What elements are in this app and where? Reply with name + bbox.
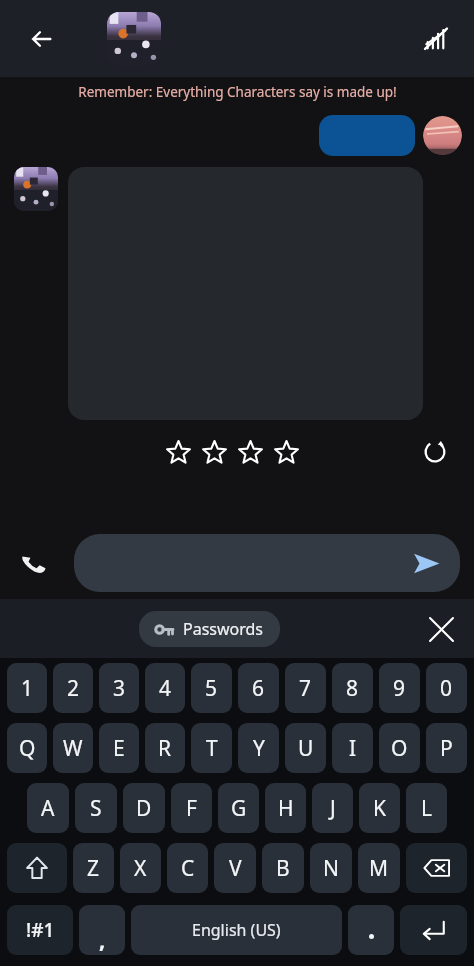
button[interactable]: V — [214, 843, 256, 893]
button[interactable]: Rate 3 stars — [232, 434, 268, 470]
button[interactable]: 9 — [379, 663, 420, 713]
button[interactable]: Your avatar — [423, 116, 462, 155]
button[interactable]: Q — [7, 723, 47, 773]
button[interactable]: English (US) — [131, 905, 342, 955]
button[interactable]: F — [171, 783, 212, 833]
staticText: 5 — [205, 674, 218, 703]
staticText: P — [440, 734, 453, 763]
staticText: K — [373, 794, 386, 823]
button[interactable]: T — [191, 723, 232, 773]
button[interactable]: A — [27, 783, 69, 833]
staticText: 7 — [299, 674, 312, 703]
button[interactable]: O — [379, 723, 420, 773]
button[interactable]: N — [310, 843, 352, 893]
button[interactable]: D — [123, 783, 165, 833]
button[interactable]: 1 — [7, 663, 47, 713]
button[interactable]: X — [120, 843, 161, 893]
button[interactable]: J — [312, 783, 353, 833]
staticText: S — [90, 794, 102, 823]
staticText: !#1 — [26, 917, 55, 943]
staticText: R — [158, 734, 172, 763]
staticText: F — [186, 794, 197, 823]
button[interactable]: P — [426, 723, 467, 773]
button[interactable]: H — [265, 783, 306, 833]
button[interactable]: 7 — [285, 663, 326, 713]
staticText: B — [276, 854, 290, 883]
staticText: Q — [19, 734, 36, 763]
staticText: X — [134, 854, 147, 883]
button[interactable]: Character avatar — [14, 167, 58, 211]
staticText: 2 — [67, 674, 80, 703]
staticText: Passwords — [183, 618, 264, 640]
button[interactable]: 4 — [145, 663, 185, 713]
button[interactable]: Period — [348, 905, 394, 955]
staticText: G — [231, 794, 247, 823]
button[interactable]: Comma — [79, 905, 125, 955]
button[interactable]: E — [99, 723, 139, 773]
button[interactable]: Close suggestions — [420, 608, 462, 650]
button[interactable]: 3 — [99, 663, 139, 713]
button[interactable]: Rate 2 stars — [196, 434, 232, 470]
button[interactable]: M — [358, 843, 400, 893]
staticText: I — [349, 734, 357, 763]
staticText: C — [181, 854, 195, 883]
staticText: W — [63, 734, 83, 763]
staticText: H — [278, 794, 294, 823]
staticText: M — [369, 854, 389, 883]
button[interactable]: Send — [74, 534, 460, 592]
button[interactable]: Y — [238, 723, 279, 773]
button[interactable]: Character avatar — [107, 12, 161, 66]
staticText: N — [323, 854, 339, 883]
button[interactable]: I — [332, 723, 373, 773]
staticText: 9 — [393, 674, 406, 703]
button[interactable]: 0 — [426, 663, 467, 713]
button[interactable]: 6 — [238, 663, 279, 713]
staticText: 8 — [346, 674, 359, 703]
button[interactable]: R — [145, 723, 185, 773]
button[interactable]: Rate 4 stars — [268, 434, 304, 470]
staticText: E — [113, 734, 125, 763]
button[interactable] — [319, 115, 415, 156]
button[interactable]: 8 — [332, 663, 373, 713]
staticText: Z — [87, 854, 100, 883]
staticText: , — [99, 924, 106, 954]
staticText: U — [298, 734, 314, 763]
button[interactable]: C — [167, 843, 208, 893]
staticText: V — [229, 854, 242, 883]
button[interactable]: 2 — [53, 663, 93, 713]
button[interactable]: Send — [406, 543, 446, 583]
button[interactable]: Passwords — [139, 611, 280, 647]
button[interactable]: Hide statistics — [412, 15, 460, 63]
button[interactable]: Call — [12, 541, 56, 585]
button[interactable]: Back — [16, 13, 68, 65]
button[interactable]: Shift — [7, 843, 67, 893]
staticText: Y — [253, 734, 265, 763]
staticText: 3 — [113, 674, 126, 703]
staticText: O — [391, 734, 408, 763]
button[interactable]: S — [75, 783, 117, 833]
staticText: L — [421, 794, 433, 823]
button[interactable]: Z — [73, 843, 114, 893]
button[interactable]: B — [262, 843, 304, 893]
staticText: J — [330, 794, 336, 823]
staticText: 0 — [440, 674, 453, 703]
button[interactable]: Backspace — [406, 843, 467, 893]
staticText: 1 — [21, 674, 34, 703]
button[interactable]: Rate 1 stars — [160, 434, 196, 470]
button[interactable]: W — [53, 723, 93, 773]
staticText: 6 — [252, 674, 265, 703]
staticText: Remember: Everything Characters say is m… — [78, 83, 397, 101]
button[interactable]: G — [218, 783, 259, 833]
staticText: D — [136, 794, 152, 823]
button[interactable]: U — [285, 723, 326, 773]
button[interactable]: Enter — [400, 905, 467, 955]
staticText: 4 — [159, 674, 172, 703]
staticText: A — [41, 794, 55, 823]
button[interactable]: 5 — [191, 663, 232, 713]
staticText: English (US) — [192, 919, 281, 941]
button[interactable]: Regenerate — [416, 433, 454, 471]
button[interactable]: L — [406, 783, 447, 833]
button[interactable]: K — [359, 783, 400, 833]
button[interactable]: !#1 — [7, 905, 73, 955]
